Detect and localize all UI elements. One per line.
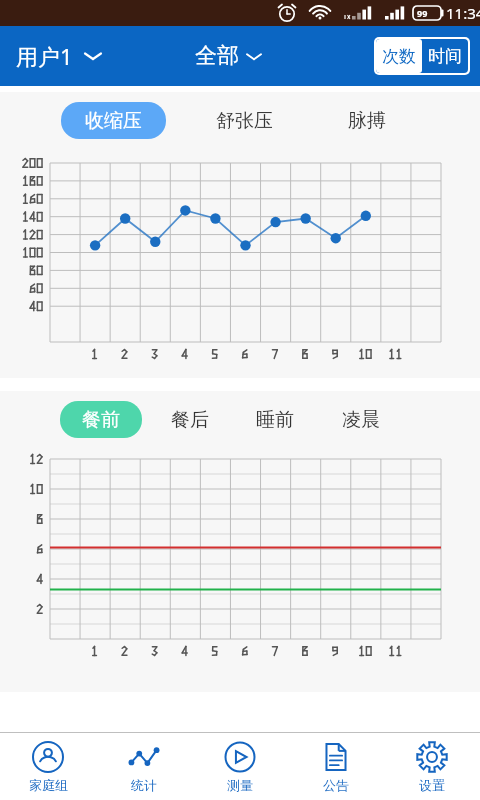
button[interactable]: 统计 [96, 733, 192, 800]
button[interactable]: 家庭组 [0, 733, 96, 800]
button[interactable]: 测量 [192, 733, 288, 800]
button[interactable]: 设置 [384, 733, 480, 800]
button[interactable]: 公告 [288, 733, 384, 800]
staticText: 餐后 [171, 408, 209, 432]
staticText: 脉搏 [348, 109, 386, 133]
staticText: 凌晨 [342, 408, 380, 432]
staticText: 用户1 [16, 41, 73, 71]
staticText: 设置 [419, 777, 445, 793]
staticText: 家庭组 [29, 777, 68, 793]
staticText: 99 [417, 7, 428, 19]
staticText: 全部 [195, 42, 239, 70]
staticText: 11:34 [446, 3, 480, 23]
button[interactable]: 用户1 [10, 35, 107, 77]
staticText: 舒张压 [216, 109, 273, 133]
button[interactable]: 全部 [187, 36, 269, 76]
staticText: 餐前 [82, 408, 120, 432]
button[interactable]: 脉搏 [334, 102, 400, 139]
staticText: 公告 [323, 777, 349, 793]
button[interactable]: 舒张压 [199, 102, 290, 139]
button[interactable]: 凌晨 [328, 401, 394, 438]
staticText: 测量 [227, 777, 253, 793]
staticText: 统计 [131, 777, 157, 793]
staticText: 次数 [382, 46, 416, 67]
button[interactable]: 次数 [376, 39, 422, 73]
button[interactable]: 时间 [422, 39, 468, 73]
staticText: 睡前 [256, 408, 294, 432]
button[interactable]: 餐后 [157, 401, 223, 438]
staticText: 收缩压 [85, 109, 142, 133]
button[interactable]: 睡前 [242, 401, 308, 438]
button[interactable]: 收缩压 [61, 102, 166, 139]
staticText: 时间 [428, 46, 462, 67]
button[interactable]: 餐前 [60, 401, 142, 438]
